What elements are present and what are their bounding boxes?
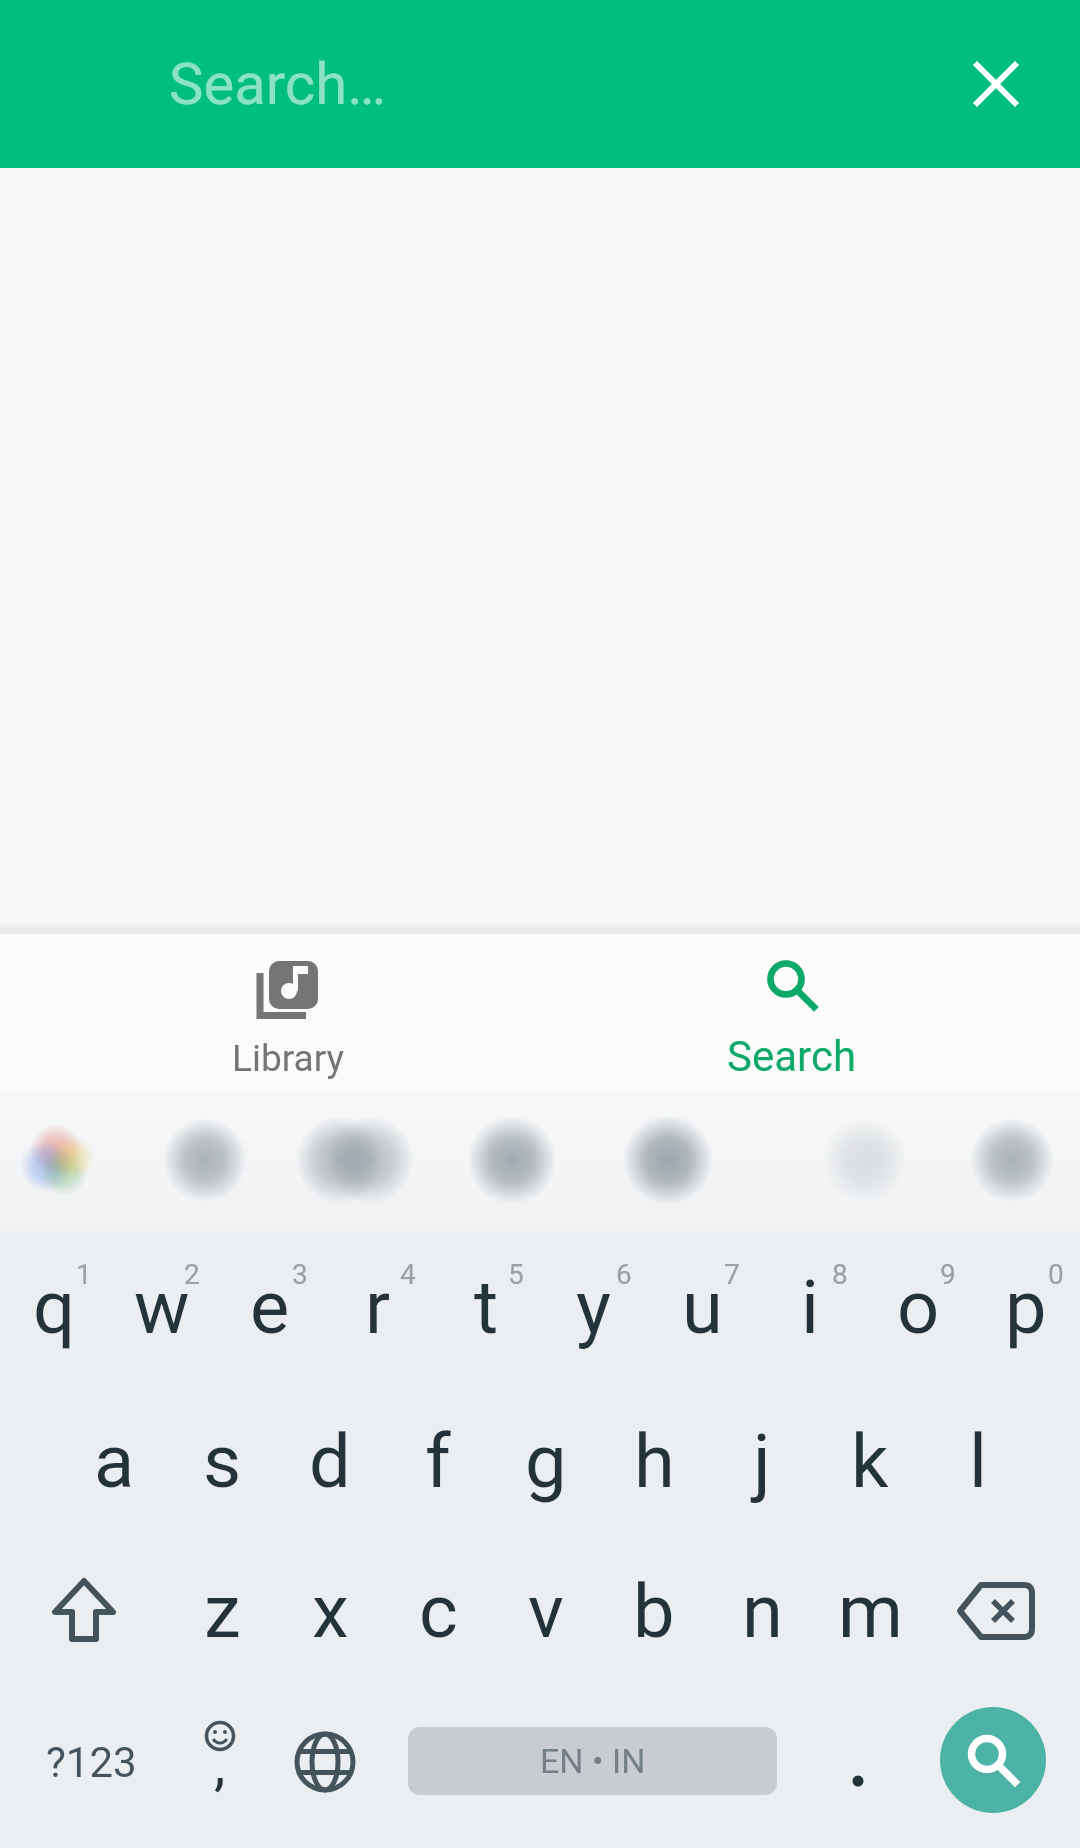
staticText: 4 (400, 1258, 416, 1291)
staticText: j (753, 1418, 771, 1505)
staticText: f (425, 1418, 451, 1505)
button[interactable] (804, 1687, 912, 1837)
button[interactable]: k (816, 1386, 924, 1536)
button[interactable]: d (276, 1386, 384, 1536)
button[interactable]: Library (36, 932, 540, 1090)
button[interactable]: n (708, 1536, 816, 1686)
button[interactable]: u (648, 1232, 756, 1382)
staticText: 8 (832, 1258, 848, 1291)
staticText: Search… (169, 50, 386, 118)
button[interactable]: ?123 (16, 1687, 166, 1837)
staticText: c (419, 1568, 458, 1655)
button[interactable]: EN • IN (408, 1727, 777, 1795)
staticText: v (528, 1568, 564, 1655)
staticText: ?123 (46, 1738, 137, 1787)
button[interactable]: , (166, 1687, 274, 1837)
staticText: r (365, 1264, 391, 1351)
staticText: Library (232, 1037, 345, 1080)
staticText: EN • IN (540, 1741, 646, 1781)
button[interactable] (271, 1687, 379, 1837)
button[interactable]: a (60, 1386, 168, 1536)
button[interactable]: e (216, 1232, 324, 1382)
button[interactable]: c (384, 1536, 492, 1686)
staticText: 0 (1048, 1258, 1064, 1291)
staticText: d (309, 1418, 351, 1505)
button[interactable] (954, 42, 1038, 126)
button[interactable]: v (492, 1536, 600, 1686)
button[interactable]: j (708, 1386, 816, 1536)
button[interactable]: s (168, 1386, 276, 1536)
button[interactable]: t (432, 1232, 540, 1382)
staticText: Search (727, 1032, 857, 1080)
staticText: p (1005, 1264, 1047, 1351)
staticText: o (897, 1264, 940, 1351)
button[interactable]: y (540, 1232, 648, 1382)
button[interactable]: p (972, 1232, 1080, 1382)
button[interactable] (912, 1536, 1080, 1686)
button[interactable]: w (108, 1232, 216, 1382)
staticText: g (525, 1418, 567, 1505)
staticText: y (576, 1264, 612, 1351)
button[interactable]: Search (540, 932, 1044, 1090)
staticText: e (250, 1264, 290, 1351)
staticText: n (742, 1568, 783, 1655)
staticText: k (851, 1418, 889, 1505)
staticText: 7 (724, 1258, 740, 1291)
staticText: s (203, 1418, 242, 1505)
button[interactable]: x (276, 1536, 384, 1686)
staticText: h (634, 1418, 675, 1505)
staticText: z (204, 1568, 241, 1655)
staticText: b (633, 1568, 675, 1655)
button[interactable]: z (168, 1536, 276, 1686)
button[interactable]: l (924, 1386, 1032, 1536)
button[interactable]: m (816, 1536, 924, 1686)
staticText: l (969, 1418, 987, 1505)
staticText: u (682, 1264, 723, 1351)
staticText: i (801, 1264, 819, 1351)
staticText: 1 (76, 1258, 92, 1291)
button[interactable]: h (600, 1386, 708, 1536)
button[interactable]: b (600, 1536, 708, 1686)
staticText: w (134, 1264, 190, 1351)
staticText: q (33, 1264, 76, 1351)
staticText: 9 (940, 1258, 956, 1291)
button[interactable] (940, 1707, 1046, 1813)
button[interactable]: r (324, 1232, 432, 1382)
staticText: a (94, 1418, 135, 1505)
staticText: x (312, 1568, 349, 1655)
button[interactable]: i (756, 1232, 864, 1382)
button[interactable]: q (0, 1232, 108, 1382)
staticText: , (214, 1730, 226, 1798)
staticText: 3 (292, 1258, 308, 1291)
staticText: 5 (508, 1258, 524, 1291)
staticText: 2 (184, 1258, 200, 1291)
button[interactable]: g (492, 1386, 600, 1536)
staticText: t (474, 1264, 499, 1351)
button[interactable] (0, 1536, 168, 1686)
staticText: m (838, 1568, 903, 1655)
staticText: 6 (616, 1258, 632, 1291)
button[interactable]: f (384, 1386, 492, 1536)
button[interactable]: o (864, 1232, 972, 1382)
button[interactable]: Search… (169, 0, 869, 168)
